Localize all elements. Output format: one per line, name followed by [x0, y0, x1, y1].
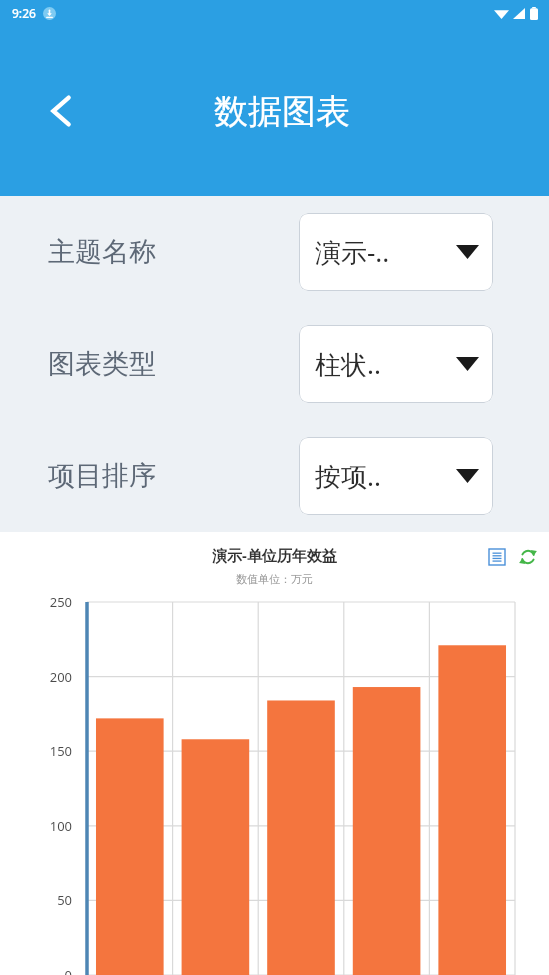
staticText: 100 [0, 817, 72, 835]
button[interactable]: 柱状.. [299, 325, 493, 403]
staticText: 柱状.. [315, 346, 381, 382]
staticText: 项目排序 [48, 459, 156, 493]
staticText: 9:26 [12, 5, 36, 21]
staticText: 200 [0, 668, 72, 686]
staticText: 50 [0, 891, 72, 909]
staticText: 按项.. [315, 458, 381, 494]
button[interactable]: 演示-.. [299, 213, 493, 291]
staticText: 0 [0, 966, 72, 975]
staticText: 150 [0, 742, 72, 760]
button[interactable]: Data table [485, 545, 509, 569]
staticText: 250 [0, 593, 72, 611]
staticText: 主题名称 [48, 235, 156, 269]
button[interactable]: Back [34, 84, 88, 138]
staticText: 图表类型 [48, 347, 156, 381]
staticText: 数据图表 [214, 90, 350, 133]
staticText: 演示-.. [315, 234, 390, 270]
button[interactable]: Refresh [516, 545, 540, 569]
button[interactable]: 按项.. [299, 437, 493, 515]
staticText: 演示-单位历年效益 [212, 545, 337, 565]
staticText: 数值单位：万元 [236, 572, 313, 586]
